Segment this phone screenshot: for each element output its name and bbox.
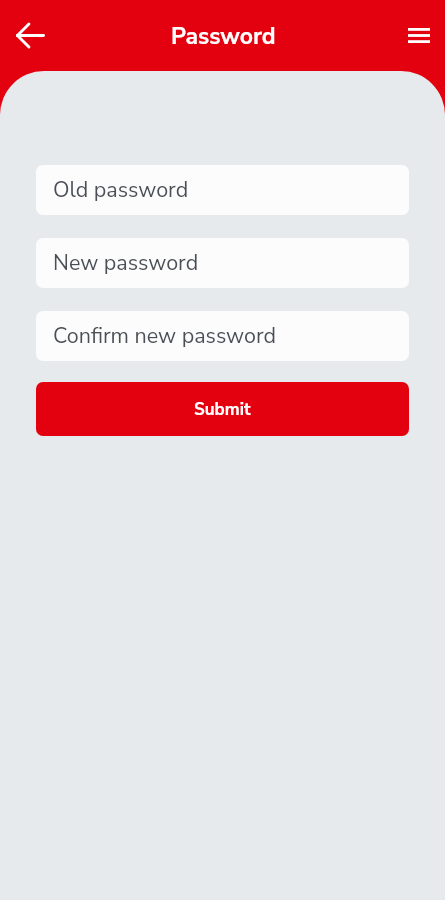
staticText: Confirm new password [53, 321, 277, 350]
staticText: Old password [53, 175, 189, 204]
button[interactable]: Confirm new password [36, 311, 409, 361]
button[interactable]: New password [36, 238, 409, 288]
staticText: Submit [194, 398, 251, 421]
button[interactable]: Old password [36, 165, 409, 215]
button[interactable]: Menu [386, 0, 445, 71]
button[interactable]: Submit [36, 382, 409, 436]
staticText: New password [53, 248, 199, 277]
staticText: Password [171, 21, 276, 52]
button[interactable]: Back [0, 0, 61, 71]
